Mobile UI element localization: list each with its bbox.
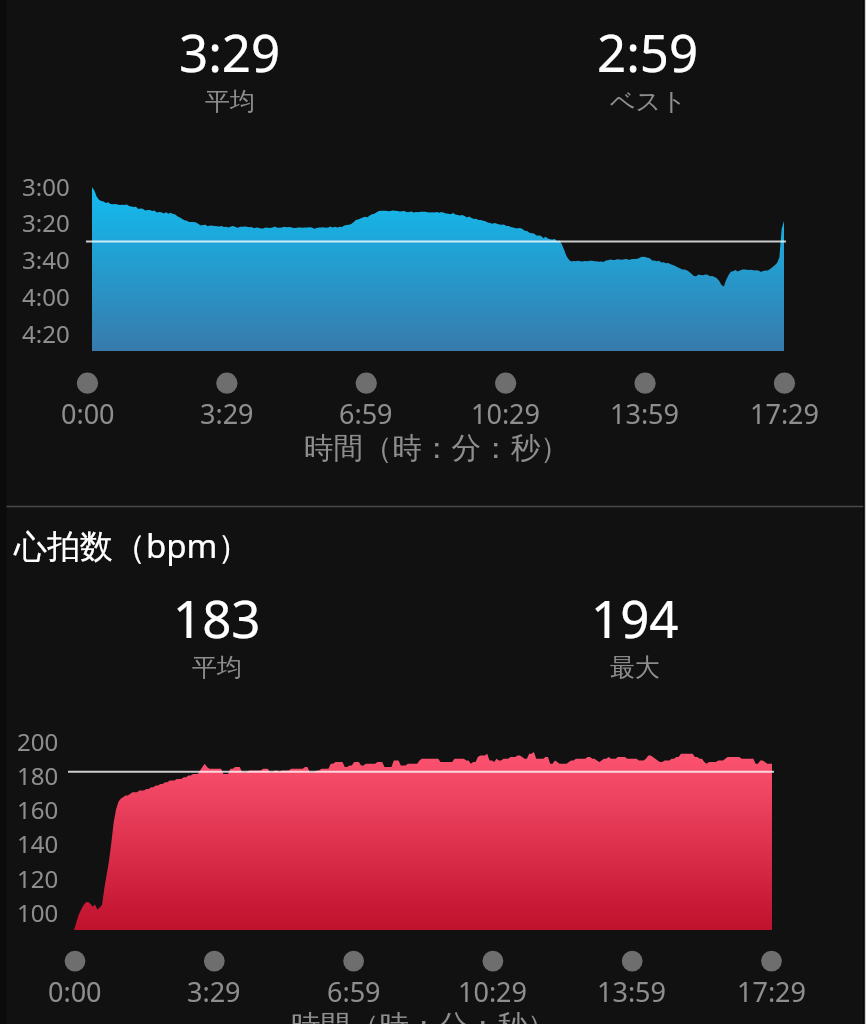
staticText: 160 xyxy=(17,793,59,826)
staticText: 17:29 xyxy=(750,395,820,432)
staticText: 194 xyxy=(591,583,679,652)
staticText: 3:29 xyxy=(187,973,241,1010)
staticText: 平均 xyxy=(192,652,242,683)
staticText: 0:00 xyxy=(48,973,102,1010)
staticText: 3:29 xyxy=(179,17,281,86)
staticText: ベスト xyxy=(610,86,687,117)
staticText: 時間（時：分：秒） xyxy=(291,1008,557,1024)
staticText: 4:20 xyxy=(22,317,70,350)
staticText: 17:29 xyxy=(737,973,807,1010)
staticText: 6:59 xyxy=(327,973,381,1010)
staticText: 183 xyxy=(173,583,261,652)
staticText: 10:29 xyxy=(471,395,541,432)
staticText: 4:00 xyxy=(22,280,70,313)
button[interactable]: 心拍数（bpm） xyxy=(8,518,245,563)
staticText: 140 xyxy=(17,827,59,860)
staticText: 時間（時：分：秒） xyxy=(304,430,570,467)
staticText: 10:29 xyxy=(458,973,528,1010)
button[interactable]: ペースのグラフ xyxy=(0,0,866,506)
button[interactable]: 3:29 xyxy=(30,17,430,117)
staticText: 180 xyxy=(17,759,59,792)
staticText: 0:00 xyxy=(61,395,115,432)
button[interactable]: 194 xyxy=(435,583,835,683)
staticText: 13:59 xyxy=(597,973,667,1010)
staticText: 3:20 xyxy=(22,206,70,239)
staticText: 100 xyxy=(17,896,59,929)
staticText: 平均 xyxy=(205,86,255,117)
staticText: 3:40 xyxy=(22,243,70,276)
staticText: 6:59 xyxy=(339,395,393,432)
button[interactable]: 183 xyxy=(17,583,417,683)
staticText: 最大 xyxy=(610,652,660,683)
staticText: 200 xyxy=(17,725,59,758)
staticText: 3:29 xyxy=(200,395,254,432)
staticText: 120 xyxy=(17,862,59,895)
staticText: 13:59 xyxy=(610,395,680,432)
button[interactable]: 2:59 xyxy=(448,17,848,117)
staticText: 2:59 xyxy=(597,17,699,86)
staticText: 3:00 xyxy=(22,170,70,203)
button[interactable]: 心拍数のグラフ xyxy=(0,507,866,1024)
staticText: 心拍数（bpm） xyxy=(14,523,251,568)
